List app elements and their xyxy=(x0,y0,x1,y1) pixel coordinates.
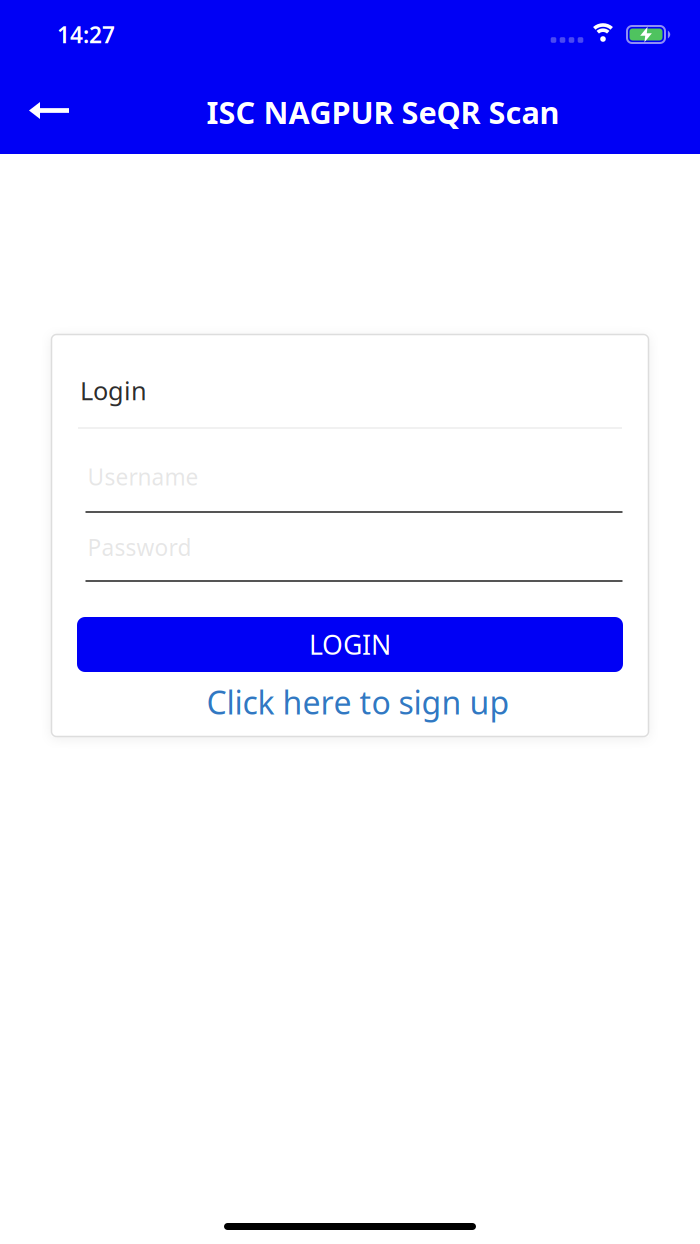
button[interactable]: Click here to sign up xyxy=(206,681,509,723)
staticText: Login xyxy=(80,374,147,407)
staticText: ISC NAGPUR SeQR Scan xyxy=(206,92,559,132)
button[interactable]: Back xyxy=(19,91,79,129)
staticText: 14:27 xyxy=(57,19,115,49)
staticText: Password xyxy=(87,532,191,562)
staticText: Click here to sign up xyxy=(206,681,509,723)
staticText: LOGIN xyxy=(309,627,391,662)
staticText: Username xyxy=(87,462,198,492)
button[interactable]: LOGIN xyxy=(77,617,623,672)
